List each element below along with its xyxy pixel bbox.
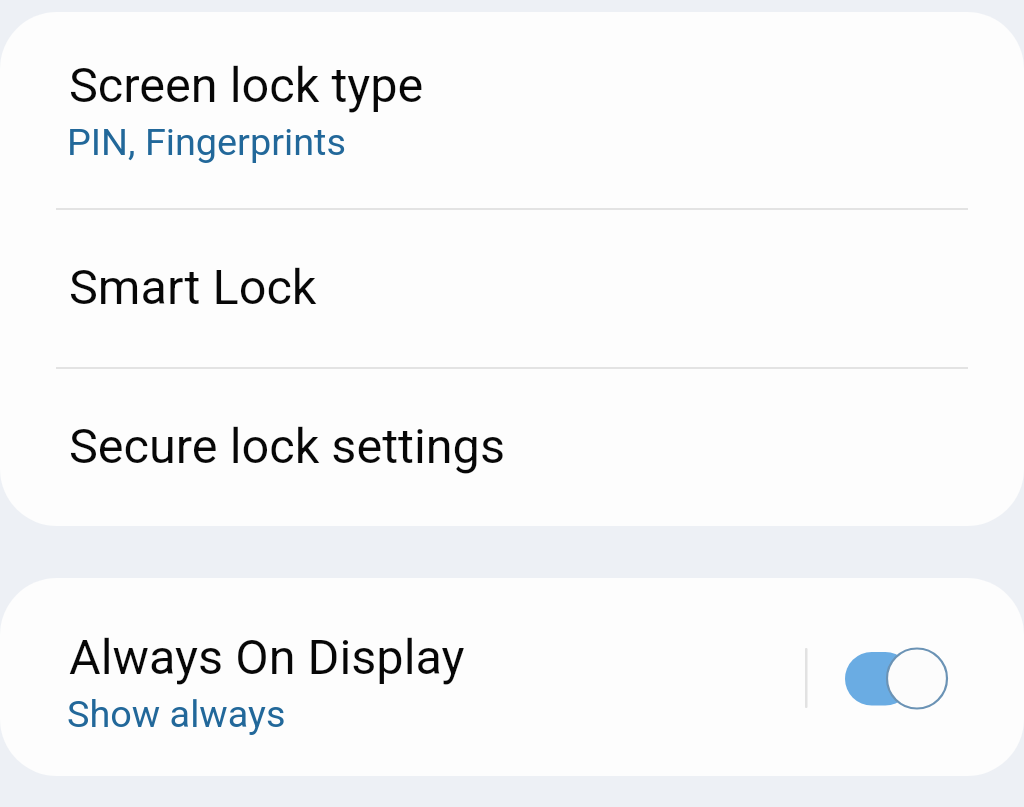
staticText: Show always <box>67 692 286 736</box>
button[interactable]: Screen lock type, PIN, Fingerprints <box>0 12 1024 210</box>
staticText: Always On Display <box>69 629 465 686</box>
button[interactable]: Smart Lock <box>0 210 1024 370</box>
staticText: Secure lock settings <box>69 418 505 475</box>
button[interactable]: Always On Display, Show always <box>0 578 1024 776</box>
staticText: PIN, Fingerprints <box>67 120 346 164</box>
button[interactable]: Always On Display switch, on <box>790 620 990 735</box>
staticText: Screen lock type <box>69 57 424 114</box>
button[interactable]: Secure lock settings <box>0 370 1024 526</box>
staticText: Smart Lock <box>69 259 317 316</box>
